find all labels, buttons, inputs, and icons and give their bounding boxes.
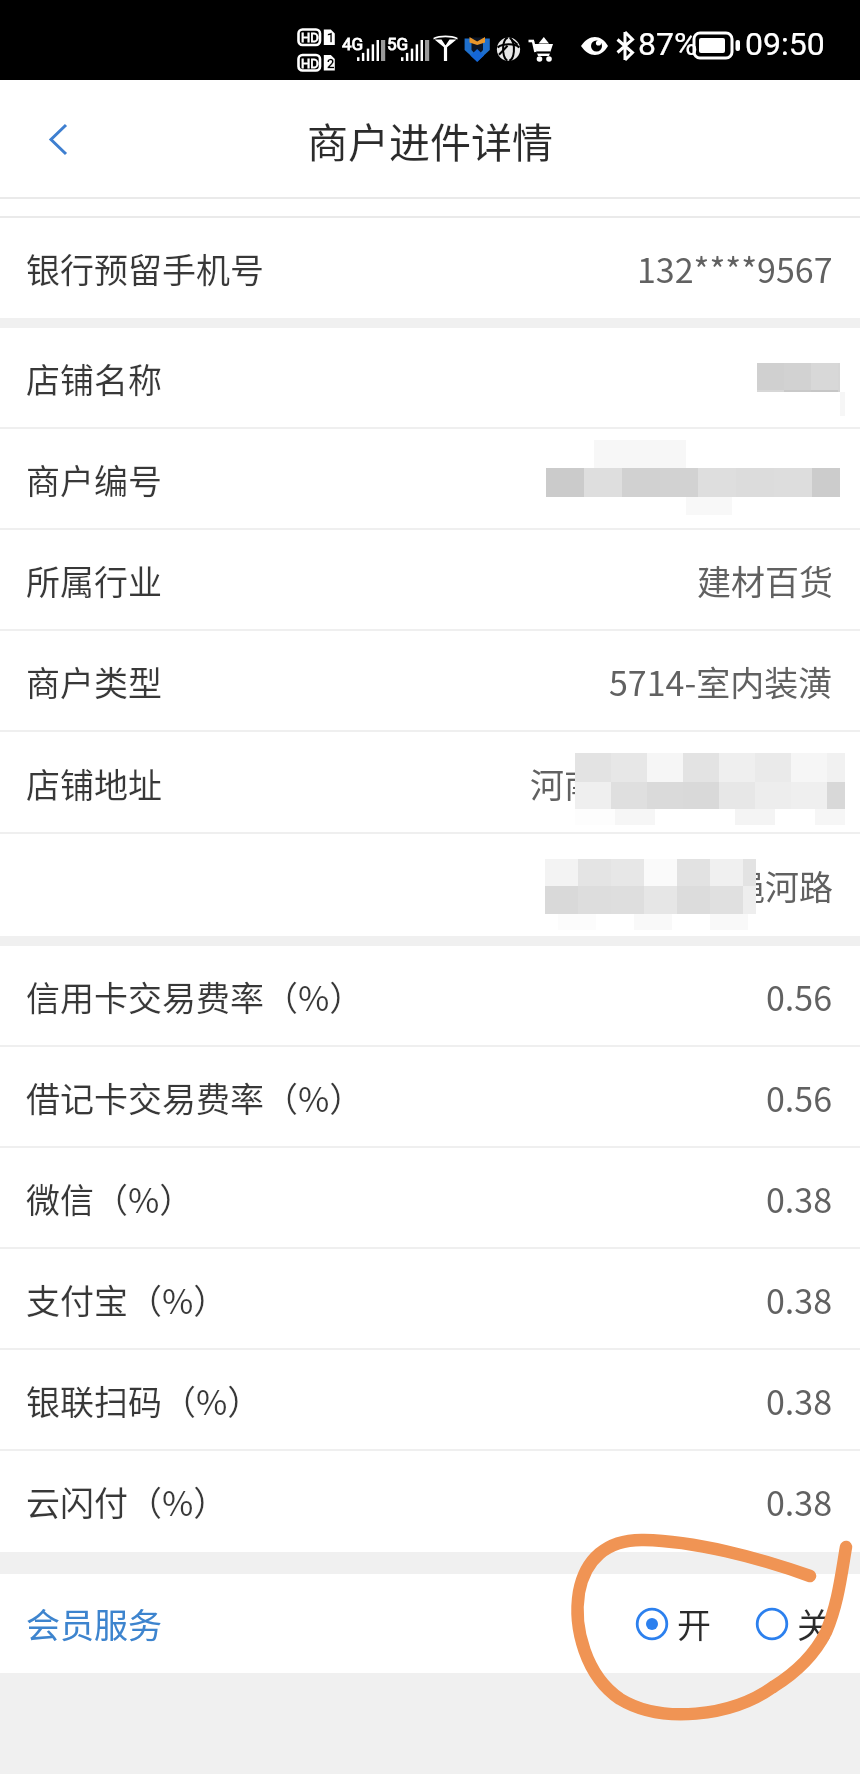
button[interactable]: 商户类型 [0, 631, 860, 732]
staticText: 银行预留手机号 [26, 244, 264, 293]
staticText: 信用卡交易费率（%） [26, 972, 364, 1021]
staticText: 2 [327, 56, 335, 71]
staticText: 银联扫码（%） [26, 1376, 262, 1425]
staticText: 4G [342, 34, 364, 54]
staticText: 1 [327, 30, 335, 45]
staticText: 云闪付（%） [26, 1477, 228, 1526]
staticText: 132****9567 [637, 244, 833, 293]
staticText: 借记卡交易费率（%） [26, 1073, 364, 1122]
staticText: 微信（%） [26, 1174, 194, 1223]
button[interactable]: 开 [636, 1599, 711, 1648]
button[interactable]: 支付宝（%） [0, 1249, 860, 1350]
button[interactable]: Back [0, 80, 110, 199]
staticText: 店铺地址 [26, 759, 162, 808]
staticText: 开 [677, 1599, 711, 1648]
staticText: 商户进件详情 [307, 110, 553, 169]
staticText: 所属行业 [26, 556, 162, 605]
button[interactable]: 信用卡交易费率（%） [0, 946, 860, 1047]
staticText: 0.38 [766, 1275, 833, 1324]
button[interactable]: 微信（%） [0, 1148, 860, 1249]
button[interactable]: 银联扫码（%） [0, 1350, 860, 1451]
staticText: 0.56 [766, 972, 833, 1021]
button[interactable]: 关 [756, 1599, 831, 1648]
button[interactable]: 借记卡交易费率（%） [0, 1047, 860, 1148]
button[interactable]: 店铺地址 [0, 732, 860, 834]
staticText: 会员服务 [26, 1599, 162, 1648]
button[interactable]: 银行预留手机号 [0, 218, 860, 318]
staticText: 支付宝（%） [26, 1275, 228, 1324]
staticText: 渑河路 [731, 861, 833, 910]
button[interactable]: 云闪付（%） [0, 1451, 860, 1552]
staticText: 商户类型 [26, 657, 162, 706]
staticText: 5G [387, 34, 409, 54]
staticText: HD [301, 30, 319, 45]
button[interactable]: 渑河路 [0, 834, 860, 936]
staticText: 店铺名称 [26, 354, 162, 403]
staticText: 09:50 [745, 25, 825, 63]
staticText: HD [301, 56, 319, 71]
staticText: 建材百货 [697, 556, 833, 605]
staticText: 0.38 [766, 1477, 833, 1526]
staticText: 0.56 [766, 1073, 833, 1122]
staticText: 5714-室内装潢 [609, 657, 833, 706]
staticText: 0.38 [766, 1174, 833, 1223]
staticText: 商户编号 [26, 455, 162, 504]
button[interactable]: 商户编号 [0, 429, 860, 530]
staticText: 87% [638, 25, 698, 63]
staticText: 关 [797, 1599, 831, 1648]
staticText: 河南省郑州市金水区 [530, 759, 836, 808]
staticText: 0.38 [766, 1376, 833, 1425]
button[interactable]: 所属行业 [0, 530, 860, 631]
button[interactable]: 店铺名称 [0, 328, 860, 429]
